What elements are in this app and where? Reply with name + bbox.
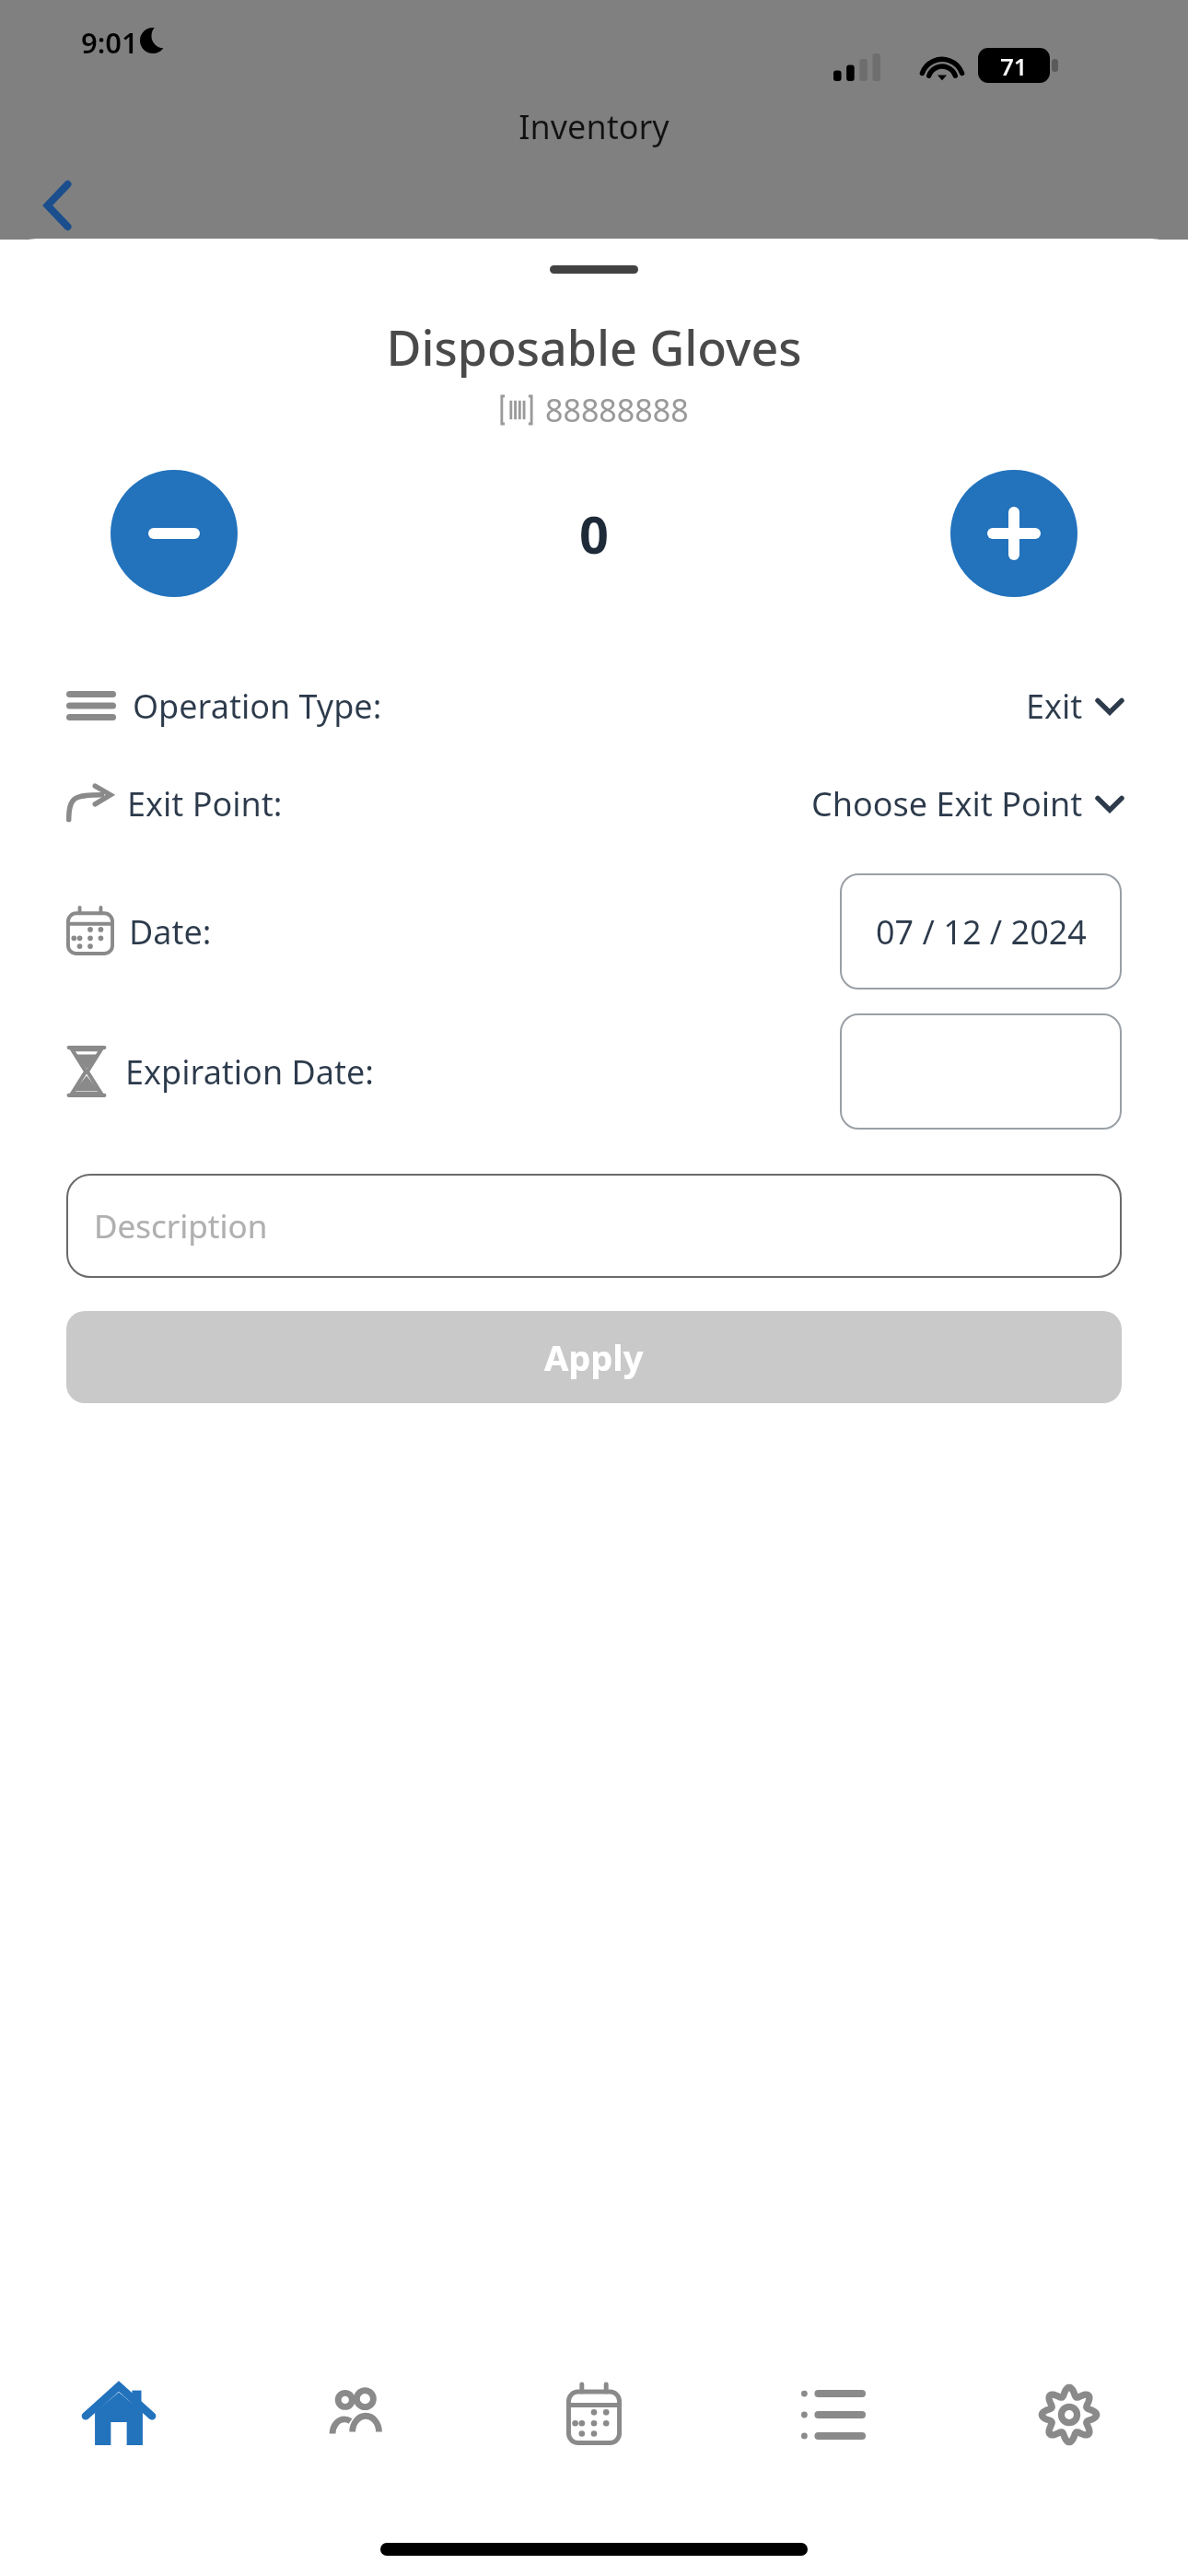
other: Back: [44, 184, 72, 227]
button[interactable]: List: [713, 2368, 950, 2576]
button[interactable]: Exit Point:: [66, 767, 1122, 840]
button[interactable]: Decrease: [111, 470, 238, 597]
staticText: Description: [94, 1204, 268, 1248]
staticText: Apply: [544, 1333, 644, 1381]
button[interactable]: Settings: [950, 2368, 1188, 2576]
staticText: Choose Exit Point: [811, 781, 1083, 826]
button[interactable]: Home: [0, 2368, 238, 2576]
staticText: 88888888: [545, 389, 689, 431]
staticText: Expiration Date:: [125, 1049, 374, 1095]
button[interactable]: People: [238, 2368, 475, 2576]
staticText: 0: [579, 498, 610, 568]
staticText: Disposable Gloves: [0, 314, 1188, 380]
staticText: 71: [1000, 50, 1028, 82]
staticText: Date:: [129, 909, 212, 954]
staticText: Exit: [1026, 684, 1083, 729]
staticText: 07 / 12 / 2024: [876, 909, 1087, 954]
staticText: 9:01: [81, 23, 138, 62]
button[interactable]: Description: [66, 1174, 1122, 1278]
staticText: Inventory: [0, 104, 1188, 149]
staticText: Operation Type:: [133, 684, 382, 729]
button[interactable]: Calendar: [475, 2368, 713, 2576]
button[interactable]: 07 / 12 / 2024: [840, 873, 1122, 989]
button[interactable]: Increase: [950, 470, 1077, 597]
staticText: Exit Point:: [127, 781, 283, 826]
button[interactable]: Expiration Date: [840, 1013, 1122, 1130]
button[interactable]: Apply: [66, 1311, 1122, 1403]
button[interactable]: Operation Type:: [66, 669, 1122, 743]
